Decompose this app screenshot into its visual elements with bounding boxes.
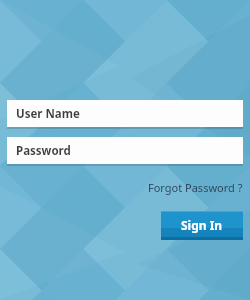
staticText: User Name [16, 106, 80, 122]
staticText: Password [16, 143, 71, 159]
button[interactable]: User Name [7, 100, 243, 128]
staticText: Forgot Password ? [148, 180, 243, 195]
button[interactable]: Password [7, 137, 243, 165]
button[interactable]: Forgot Password ? [148, 178, 250, 197]
staticText: Sign In [181, 217, 223, 233]
button[interactable]: Sign In [161, 211, 243, 240]
